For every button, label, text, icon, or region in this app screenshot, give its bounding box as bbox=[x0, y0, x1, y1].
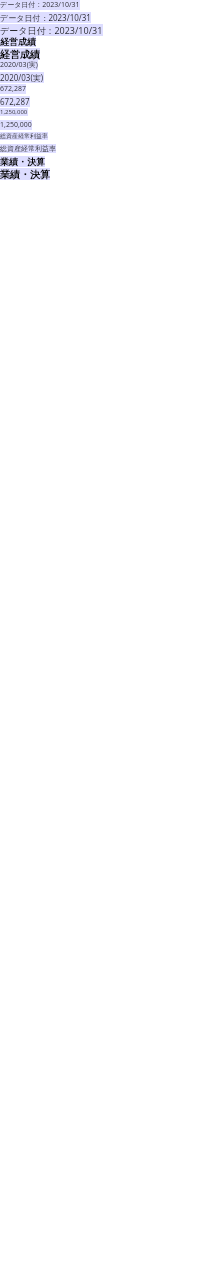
staticText: 2020/03(実) bbox=[0, 60, 38, 70]
staticText: 経営成績 bbox=[0, 48, 40, 60]
staticText: データ日付：2023/10/31 bbox=[0, 0, 80, 10]
staticText: 672,287 bbox=[0, 96, 30, 107]
staticText: 経営成績 bbox=[0, 36, 36, 47]
staticText: 総資産経常利益率 bbox=[0, 132, 48, 140]
staticText: 2020/03(実) bbox=[0, 72, 44, 83]
staticText: データ日付：2023/10/31 bbox=[0, 24, 103, 36]
staticText: データ日付：2023/10/31 bbox=[0, 12, 91, 23]
staticText: 総資産経常利益率 bbox=[0, 144, 56, 153]
staticText: 1,250,000 bbox=[0, 120, 32, 130]
staticText: 672,287 bbox=[0, 84, 26, 94]
staticText: 業績・決算 bbox=[0, 156, 45, 167]
staticText: 業績・決算 bbox=[0, 168, 50, 180]
staticText: 1,250,000 bbox=[0, 108, 28, 116]
